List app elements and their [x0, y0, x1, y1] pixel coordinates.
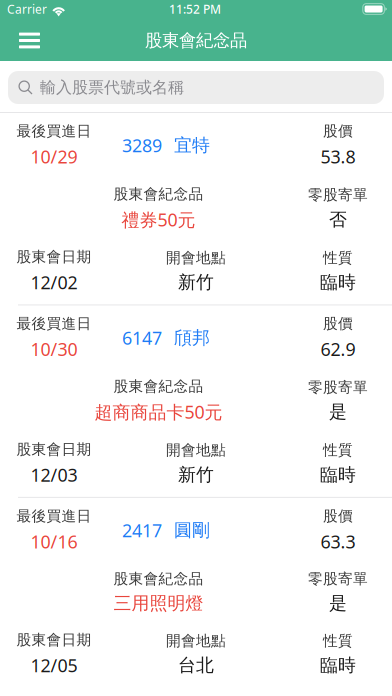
staticText: 12/02: [30, 270, 77, 294]
staticText: 臨時: [320, 463, 356, 486]
staticText: 最後買進日: [16, 122, 91, 140]
staticText: 頎邦: [174, 327, 210, 349]
button[interactable]: 輸入股票代號或名稱: [8, 71, 384, 104]
staticText: 11:52 PM: [169, 1, 221, 17]
staticText: 是: [329, 401, 347, 423]
staticText: 宜特: [174, 134, 210, 157]
staticText: 股價: [323, 314, 353, 333]
staticText: 輸入股票代號或名稱: [40, 78, 184, 97]
staticText: 性質: [323, 632, 353, 650]
staticText: 2417: [122, 518, 162, 542]
staticText: 最後買進日: [16, 507, 91, 525]
staticText: 股價: [323, 507, 353, 525]
staticText: 10/30: [30, 337, 77, 361]
staticText: 10/29: [30, 144, 77, 169]
staticText: 股東會日期: [16, 248, 91, 266]
staticText: 性質: [323, 441, 353, 459]
staticText: 股東會日期: [16, 440, 91, 459]
staticText: 12/03: [30, 462, 77, 487]
staticText: Carrier: [7, 1, 47, 17]
button[interactable]: 最後買進日: [0, 113, 392, 304]
staticText: 12/05: [30, 653, 77, 677]
staticText: 台北: [178, 654, 214, 677]
staticText: 三用照明燈: [113, 592, 203, 615]
staticText: 開會地點: [166, 632, 226, 650]
staticText: 零股寄單: [308, 186, 368, 204]
staticText: 新竹: [178, 271, 214, 293]
staticText: 62.9: [320, 337, 355, 361]
staticText: 股東會紀念品: [113, 185, 203, 203]
staticText: 最後買進日: [16, 314, 91, 333]
staticText: 零股寄單: [308, 570, 368, 588]
staticText: 6147: [122, 326, 162, 350]
button[interactable]: 最後買進日: [0, 305, 392, 497]
staticText: 股東會紀念品: [113, 570, 203, 588]
staticText: 63.3: [320, 529, 355, 554]
staticText: 股東會紀念品: [113, 377, 203, 396]
staticText: 零股寄單: [308, 378, 368, 397]
staticText: 圓剛: [174, 519, 210, 541]
staticText: 超商商品卡50元: [94, 400, 222, 424]
staticText: 股東會紀念品: [145, 30, 247, 51]
staticText: 臨時: [320, 654, 356, 677]
staticText: 股東會日期: [16, 631, 91, 649]
staticText: 3289: [122, 133, 162, 157]
staticText: 禮券50元: [121, 207, 195, 232]
staticText: 10/16: [30, 529, 77, 554]
staticText: 是: [329, 592, 347, 615]
staticText: 性質: [323, 248, 353, 267]
button[interactable]: Menu: [0, 24, 52, 57]
staticText: 開會地點: [166, 441, 226, 459]
staticText: 股價: [323, 122, 353, 140]
button[interactable]: 最後買進日: [0, 498, 392, 687]
staticText: 53.8: [320, 144, 355, 169]
staticText: 新竹: [178, 463, 214, 486]
staticText: 臨時: [320, 271, 356, 293]
staticText: 否: [329, 208, 347, 231]
staticText: 開會地點: [166, 248, 226, 267]
